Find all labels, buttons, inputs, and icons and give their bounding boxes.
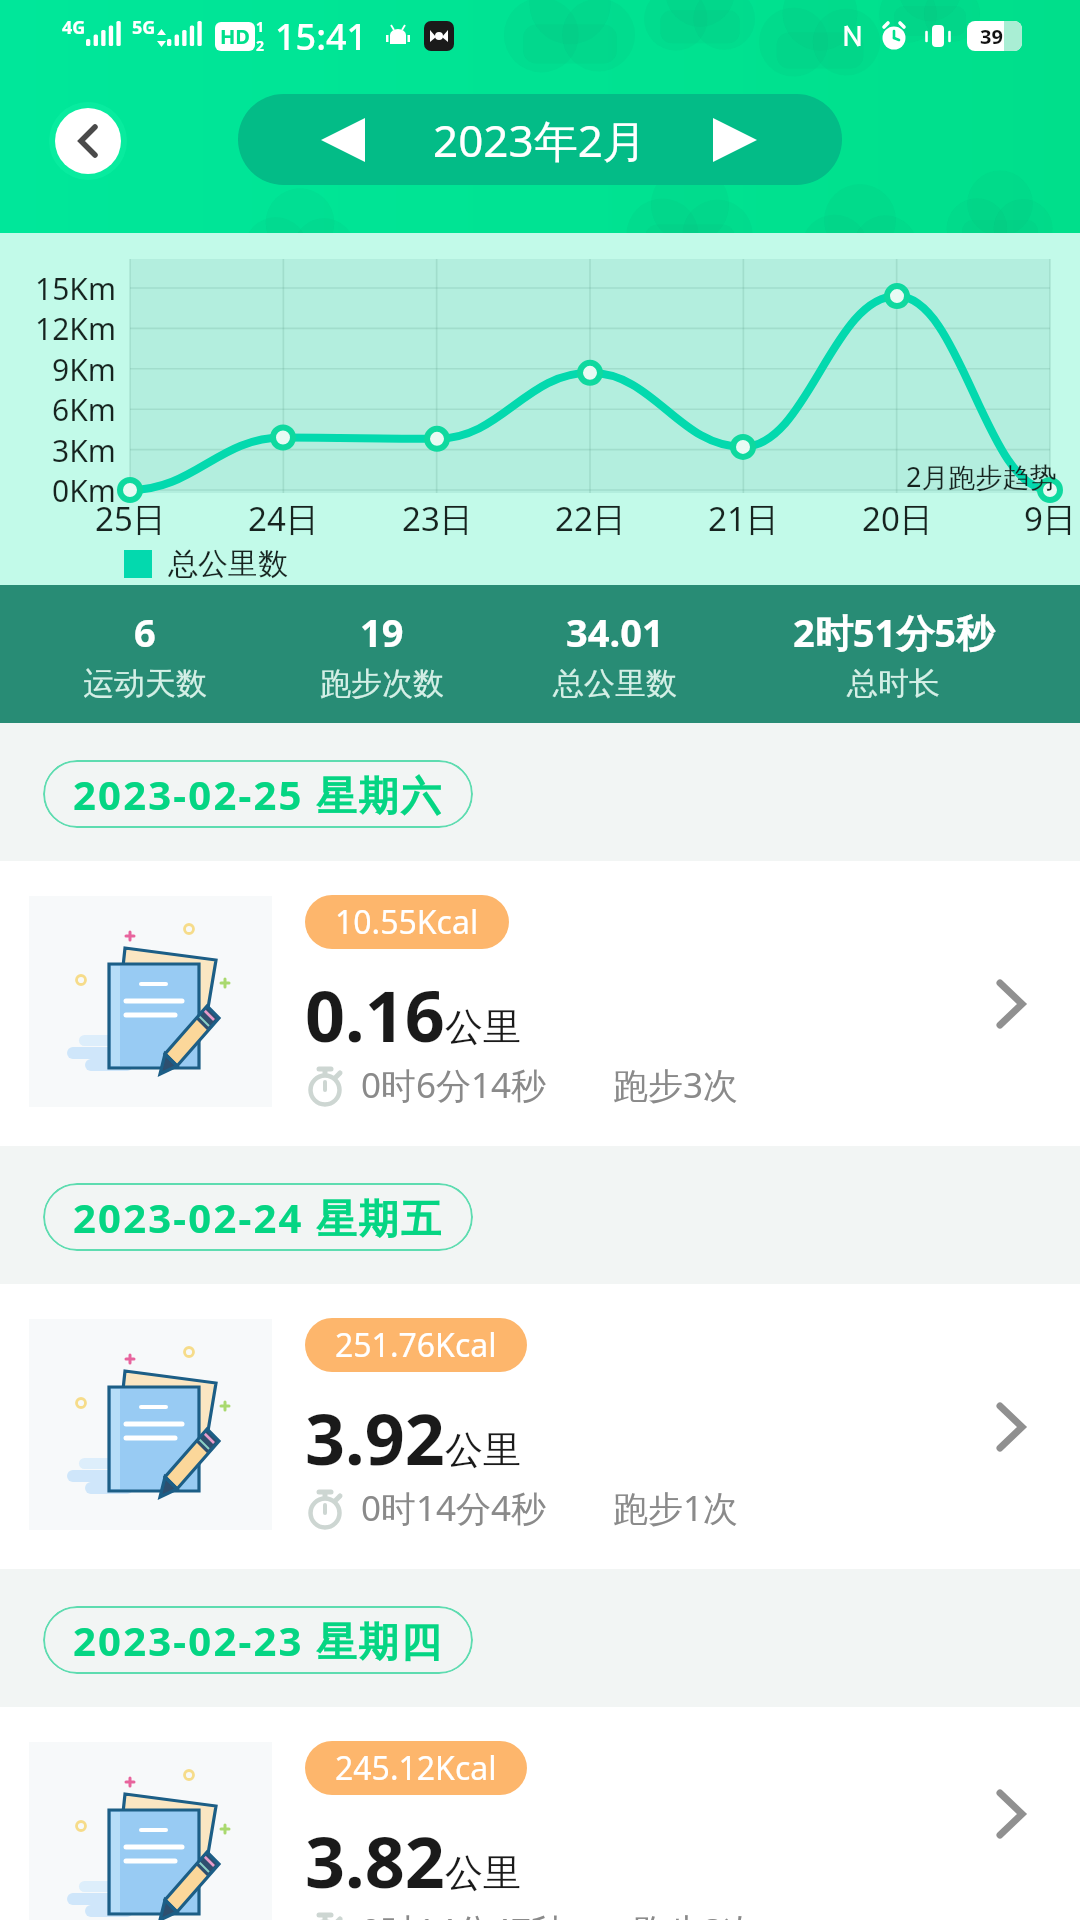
staticText: 公里 — [445, 1003, 521, 1051]
staticText: 0时14分47秒 — [361, 1907, 567, 1920]
staticText: 2月跑步趋势 — [906, 458, 1057, 495]
staticText: 22日 — [555, 496, 626, 541]
staticText: 5G — [132, 15, 156, 40]
staticText: 0时14分4秒 — [361, 1484, 547, 1532]
staticText: 2 — [256, 36, 265, 55]
button[interactable]: Previous month — [283, 94, 403, 185]
staticText: HD — [220, 23, 250, 50]
staticText: 10.55Kcal — [335, 900, 479, 944]
staticText: 25日 — [95, 496, 166, 541]
staticText: 跑步3次 — [633, 1907, 759, 1920]
button[interactable]: Back — [48, 101, 128, 181]
staticText: 3Km — [52, 430, 116, 471]
staticText: 9日 — [1024, 496, 1076, 541]
staticText: 6 — [134, 606, 156, 658]
staticText: 245.12Kcal — [335, 1746, 497, 1790]
staticText: 0时6分14秒 — [361, 1061, 547, 1109]
staticText: 15:41 — [275, 12, 368, 61]
button[interactable]: 251.76Kcal — [0, 1284, 1080, 1569]
staticText: 24日 — [248, 496, 319, 541]
staticText: 15Km — [35, 268, 116, 309]
staticText: 0Km — [52, 470, 116, 511]
staticText: 34.01 — [566, 606, 664, 658]
button[interactable]: 2023-02-25 星期六 — [43, 760, 473, 828]
staticText: 3.92 — [305, 1390, 445, 1485]
staticText: 39 — [980, 23, 1003, 50]
staticText: 跑步1次 — [613, 1484, 739, 1532]
staticText: 3.82 — [305, 1813, 445, 1908]
staticText: 6Km — [52, 389, 116, 430]
staticText: 跑步次数 — [320, 664, 444, 703]
staticText: 公里 — [445, 1849, 521, 1897]
button[interactable]: Details — [960, 1707, 1060, 1920]
staticText: 2023-02-24 星期五 — [73, 1190, 443, 1245]
staticText: 19 — [360, 606, 404, 658]
button[interactable]: Details — [960, 861, 1060, 1146]
staticText: 总公里数 — [553, 664, 677, 703]
button[interactable]: 245.12Kcal — [0, 1707, 1080, 1920]
staticText: 公里 — [445, 1426, 521, 1474]
staticText: 2023-02-25 星期六 — [73, 767, 443, 822]
staticText: 20日 — [862, 496, 933, 541]
staticText: 12Km — [35, 308, 116, 349]
staticText: 0.16 — [305, 967, 445, 1062]
staticText: 251.76Kcal — [335, 1323, 497, 1367]
staticText: 2时51分5秒 — [793, 606, 994, 658]
staticText: 运动天数 — [83, 664, 207, 703]
button[interactable]: Next month — [675, 94, 795, 185]
button[interactable]: 10.55Kcal — [0, 861, 1080, 1146]
button[interactable]: Details — [960, 1284, 1060, 1569]
staticText: 9Km — [52, 349, 116, 390]
staticText: 23日 — [402, 496, 473, 541]
staticText: 2023年2月 — [433, 110, 647, 170]
staticText: 1 — [256, 17, 265, 36]
staticText: 4G — [62, 15, 86, 40]
staticText: 跑步3次 — [613, 1061, 739, 1109]
button[interactable]: 2023-02-24 星期五 — [43, 1183, 473, 1251]
button[interactable]: Previous month — [238, 94, 842, 185]
button[interactable]: 2023-02-23 星期四 — [43, 1606, 473, 1674]
staticText: 总时长 — [847, 664, 940, 703]
staticText: 21日 — [708, 496, 779, 541]
staticText: 2023-02-23 星期四 — [73, 1613, 443, 1668]
staticText: 总公里数 — [168, 545, 288, 583]
